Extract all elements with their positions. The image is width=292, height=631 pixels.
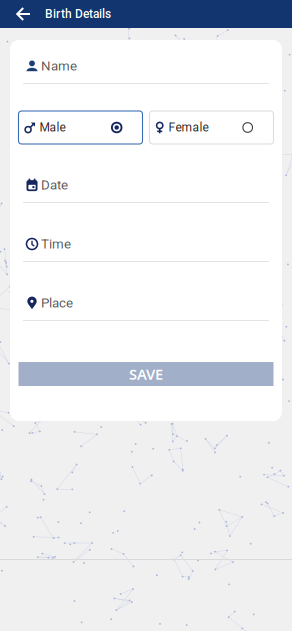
staticText: Place	[41, 295, 73, 311]
button[interactable]: Male	[18, 111, 142, 144]
staticText: Date	[41, 177, 68, 193]
staticText: Female	[168, 120, 208, 135]
staticText: SAVE	[129, 364, 163, 384]
button[interactable]: Back	[9, 0, 39, 28]
button[interactable]: Date	[23, 162, 269, 203]
button[interactable]: Name	[23, 43, 269, 84]
button[interactable]: Place	[23, 280, 269, 321]
staticText: Male	[39, 120, 65, 135]
button[interactable]: SAVE	[18, 362, 273, 386]
staticText: Birth Details	[45, 7, 111, 21]
staticText: Name	[41, 58, 77, 74]
button[interactable]: Time	[23, 221, 269, 262]
button[interactable]: Female	[149, 111, 273, 144]
staticText: Time	[41, 236, 71, 252]
